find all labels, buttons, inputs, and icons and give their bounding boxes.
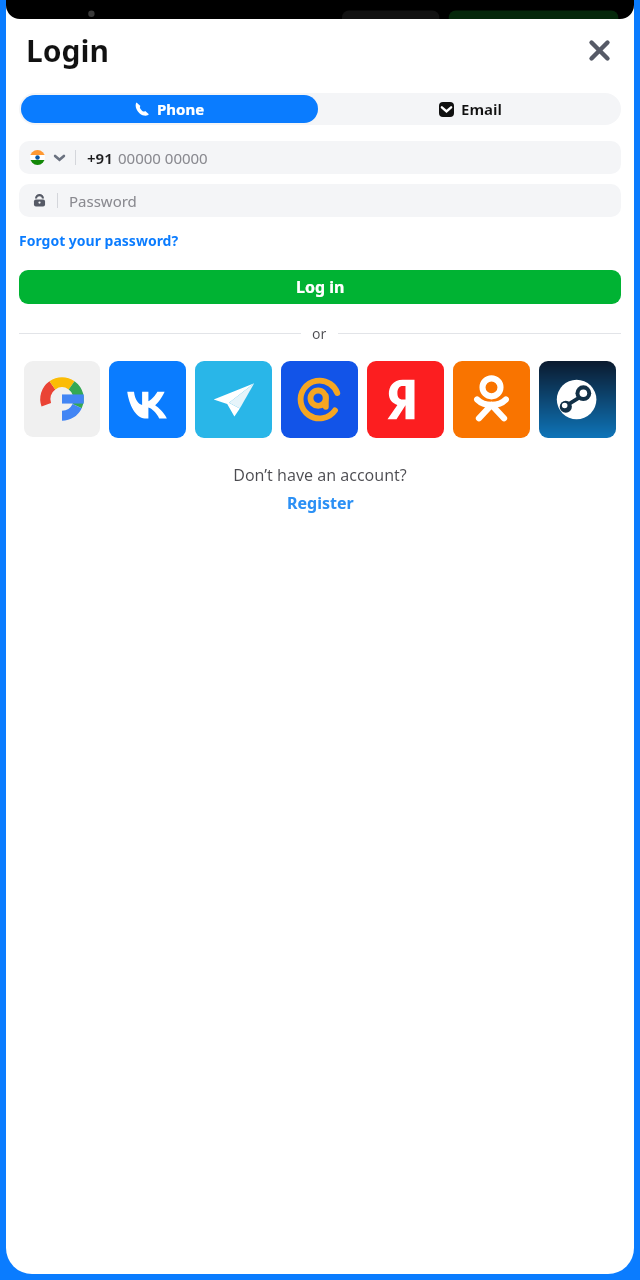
staticText: Email: [461, 99, 502, 119]
button[interactable]: Sign in with Steam: [539, 361, 616, 438]
button[interactable]: Sign in with VK: [109, 361, 186, 438]
staticText: 00000 00000: [118, 148, 208, 168]
button[interactable]: Password: [19, 184, 621, 217]
button[interactable]: Sign in with Yandex: [367, 361, 444, 438]
staticText: Register: [287, 492, 354, 514]
staticText: Forgot your password?: [19, 231, 179, 250]
button[interactable]: Register: [287, 492, 354, 514]
staticText: Don’t have an account?: [233, 464, 407, 486]
button[interactable]: Sign in with Odnoklassniki: [453, 361, 530, 438]
staticText: Phone: [157, 99, 205, 119]
staticText: Log in: [296, 276, 345, 298]
button[interactable]: Select country: [19, 141, 621, 174]
staticText: Login: [26, 30, 109, 71]
button[interactable]: Sign in with Mail.ru: [281, 361, 358, 438]
staticText: +91: [87, 148, 113, 168]
button[interactable]: Phone: [21, 95, 318, 123]
staticText: Password: [69, 191, 137, 211]
button[interactable]: Log in: [19, 270, 621, 304]
button[interactable]: Sign in with Google: [24, 361, 100, 437]
button[interactable]: Email: [320, 93, 621, 125]
button[interactable]: Forgot your password?: [19, 231, 179, 250]
staticText: or: [312, 324, 327, 343]
other: Select country: [53, 151, 66, 164]
button[interactable]: Sign in with Telegram: [195, 361, 272, 438]
button[interactable]: Close: [578, 29, 620, 71]
